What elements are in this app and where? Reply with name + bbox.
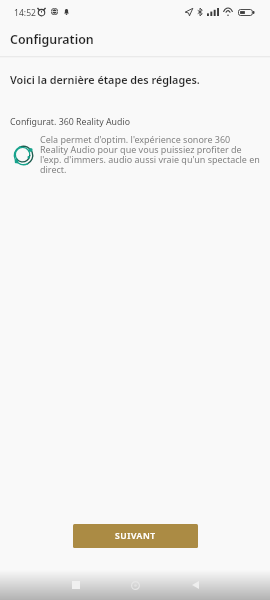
button[interactable]: Back bbox=[180, 570, 210, 600]
staticText: Cela permet d'optim. l'expérience sonore… bbox=[40, 133, 270, 176]
staticText: Voici la dernière étape des réglages. bbox=[10, 72, 200, 87]
button[interactable]: Home bbox=[120, 570, 150, 600]
button[interactable]: SUIVANT bbox=[73, 524, 198, 548]
staticText: Configuration bbox=[10, 31, 94, 48]
staticText: SUIVANT bbox=[115, 530, 156, 542]
staticText: 14:52 bbox=[14, 7, 36, 19]
staticText: Configurat. 360 Reality Audio bbox=[10, 116, 130, 128]
button[interactable]: Recents bbox=[61, 570, 91, 600]
